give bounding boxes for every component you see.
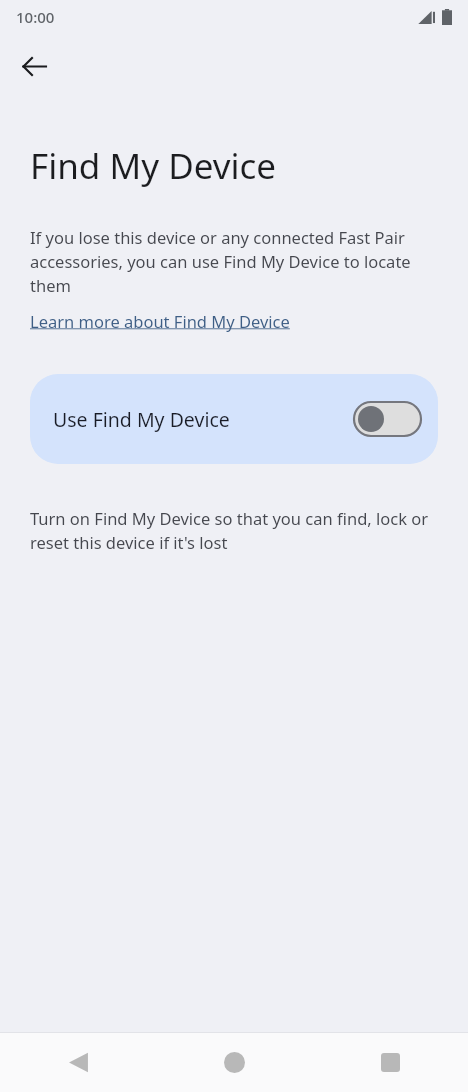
staticText: Use Find My Device — [53, 406, 354, 433]
button[interactable]: Use Find My Device — [30, 374, 438, 464]
staticText: Find My Device — [30, 142, 277, 190]
staticText: Turn on Find My Device so that you can f… — [30, 507, 434, 554]
button[interactable]: Back — [0, 1033, 156, 1092]
button[interactable]: Home — [156, 1033, 312, 1092]
staticText: Learn more about Find My Device — [30, 310, 290, 332]
button[interactable]: Learn more about Find My Device — [30, 310, 290, 332]
button[interactable]: Back — [10, 42, 58, 90]
button[interactable]: Recent apps — [312, 1033, 468, 1092]
staticText: 10:00 — [16, 7, 55, 27]
staticText: If you lose this device or any connected… — [30, 226, 434, 297]
